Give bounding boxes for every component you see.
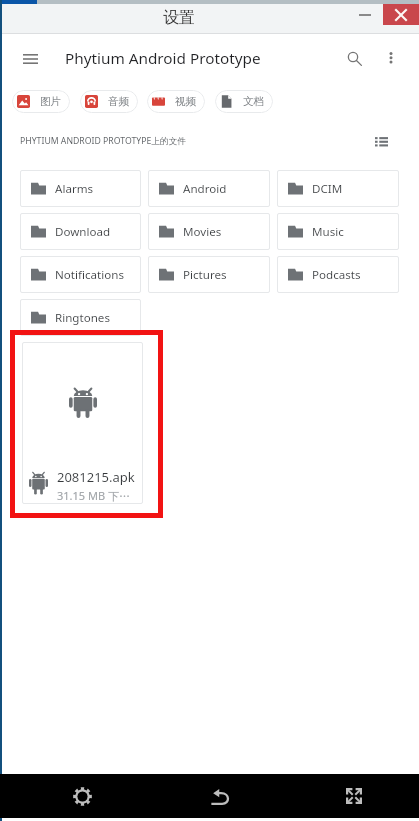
- staticText: Music: [312, 224, 344, 240]
- staticText: Phytium Android Prototype: [65, 48, 261, 69]
- staticText: Podcasts: [312, 267, 361, 283]
- staticText: Download: [55, 224, 111, 240]
- button[interactable]: Ringtones: [20, 299, 141, 336]
- staticText: Movies: [183, 224, 222, 240]
- staticText: 音频: [108, 95, 130, 108]
- button[interactable]: Close: [383, 4, 419, 25]
- button[interactable]: Podcasts: [277, 256, 399, 293]
- staticText: 文档: [243, 95, 265, 108]
- staticText: 31.15 MB 下午2:…: [57, 488, 138, 503]
- staticText: Notifications: [55, 267, 124, 283]
- staticText: 图片: [40, 95, 62, 108]
- staticText: Ringtones: [55, 310, 110, 326]
- button[interactable]: Menu: [15, 46, 45, 70]
- button[interactable]: 文档: [215, 90, 273, 113]
- button[interactable]: Search: [339, 46, 369, 70]
- button[interactable]: Android: [148, 170, 270, 207]
- button[interactable]: More options: [377, 46, 405, 70]
- staticText: 设置: [163, 8, 195, 28]
- button[interactable]: 图片: [12, 90, 70, 113]
- button[interactable]: Movies: [148, 213, 270, 250]
- staticText: Pictures: [183, 267, 227, 283]
- button[interactable]: Settings: [46, 774, 119, 818]
- staticText: Android: [183, 181, 227, 197]
- button[interactable]: Alarms: [20, 170, 141, 207]
- button[interactable]: Music: [277, 213, 399, 250]
- button[interactable]: Minimize: [347, 4, 383, 25]
- button[interactable]: Fullscreen: [317, 774, 390, 818]
- button[interactable]: Pictures: [148, 256, 270, 293]
- button[interactable]: List view: [370, 131, 392, 151]
- button[interactable]: 2081215.apk: [22, 342, 143, 504]
- staticText: Alarms: [55, 181, 94, 197]
- staticText: 视频: [175, 95, 197, 108]
- button[interactable]: Download: [20, 213, 141, 250]
- button[interactable]: DCIM: [277, 170, 399, 207]
- button[interactable]: 视频: [147, 90, 205, 113]
- staticText: DCIM: [312, 181, 343, 197]
- button[interactable]: 音频: [80, 90, 138, 113]
- button[interactable]: Back: [183, 774, 256, 818]
- button[interactable]: Notifications: [20, 256, 141, 293]
- staticText: PHYTIUM ANDROID PROTOTYPE上的文件: [20, 135, 187, 147]
- staticText: 2081215.apk: [57, 468, 135, 486]
